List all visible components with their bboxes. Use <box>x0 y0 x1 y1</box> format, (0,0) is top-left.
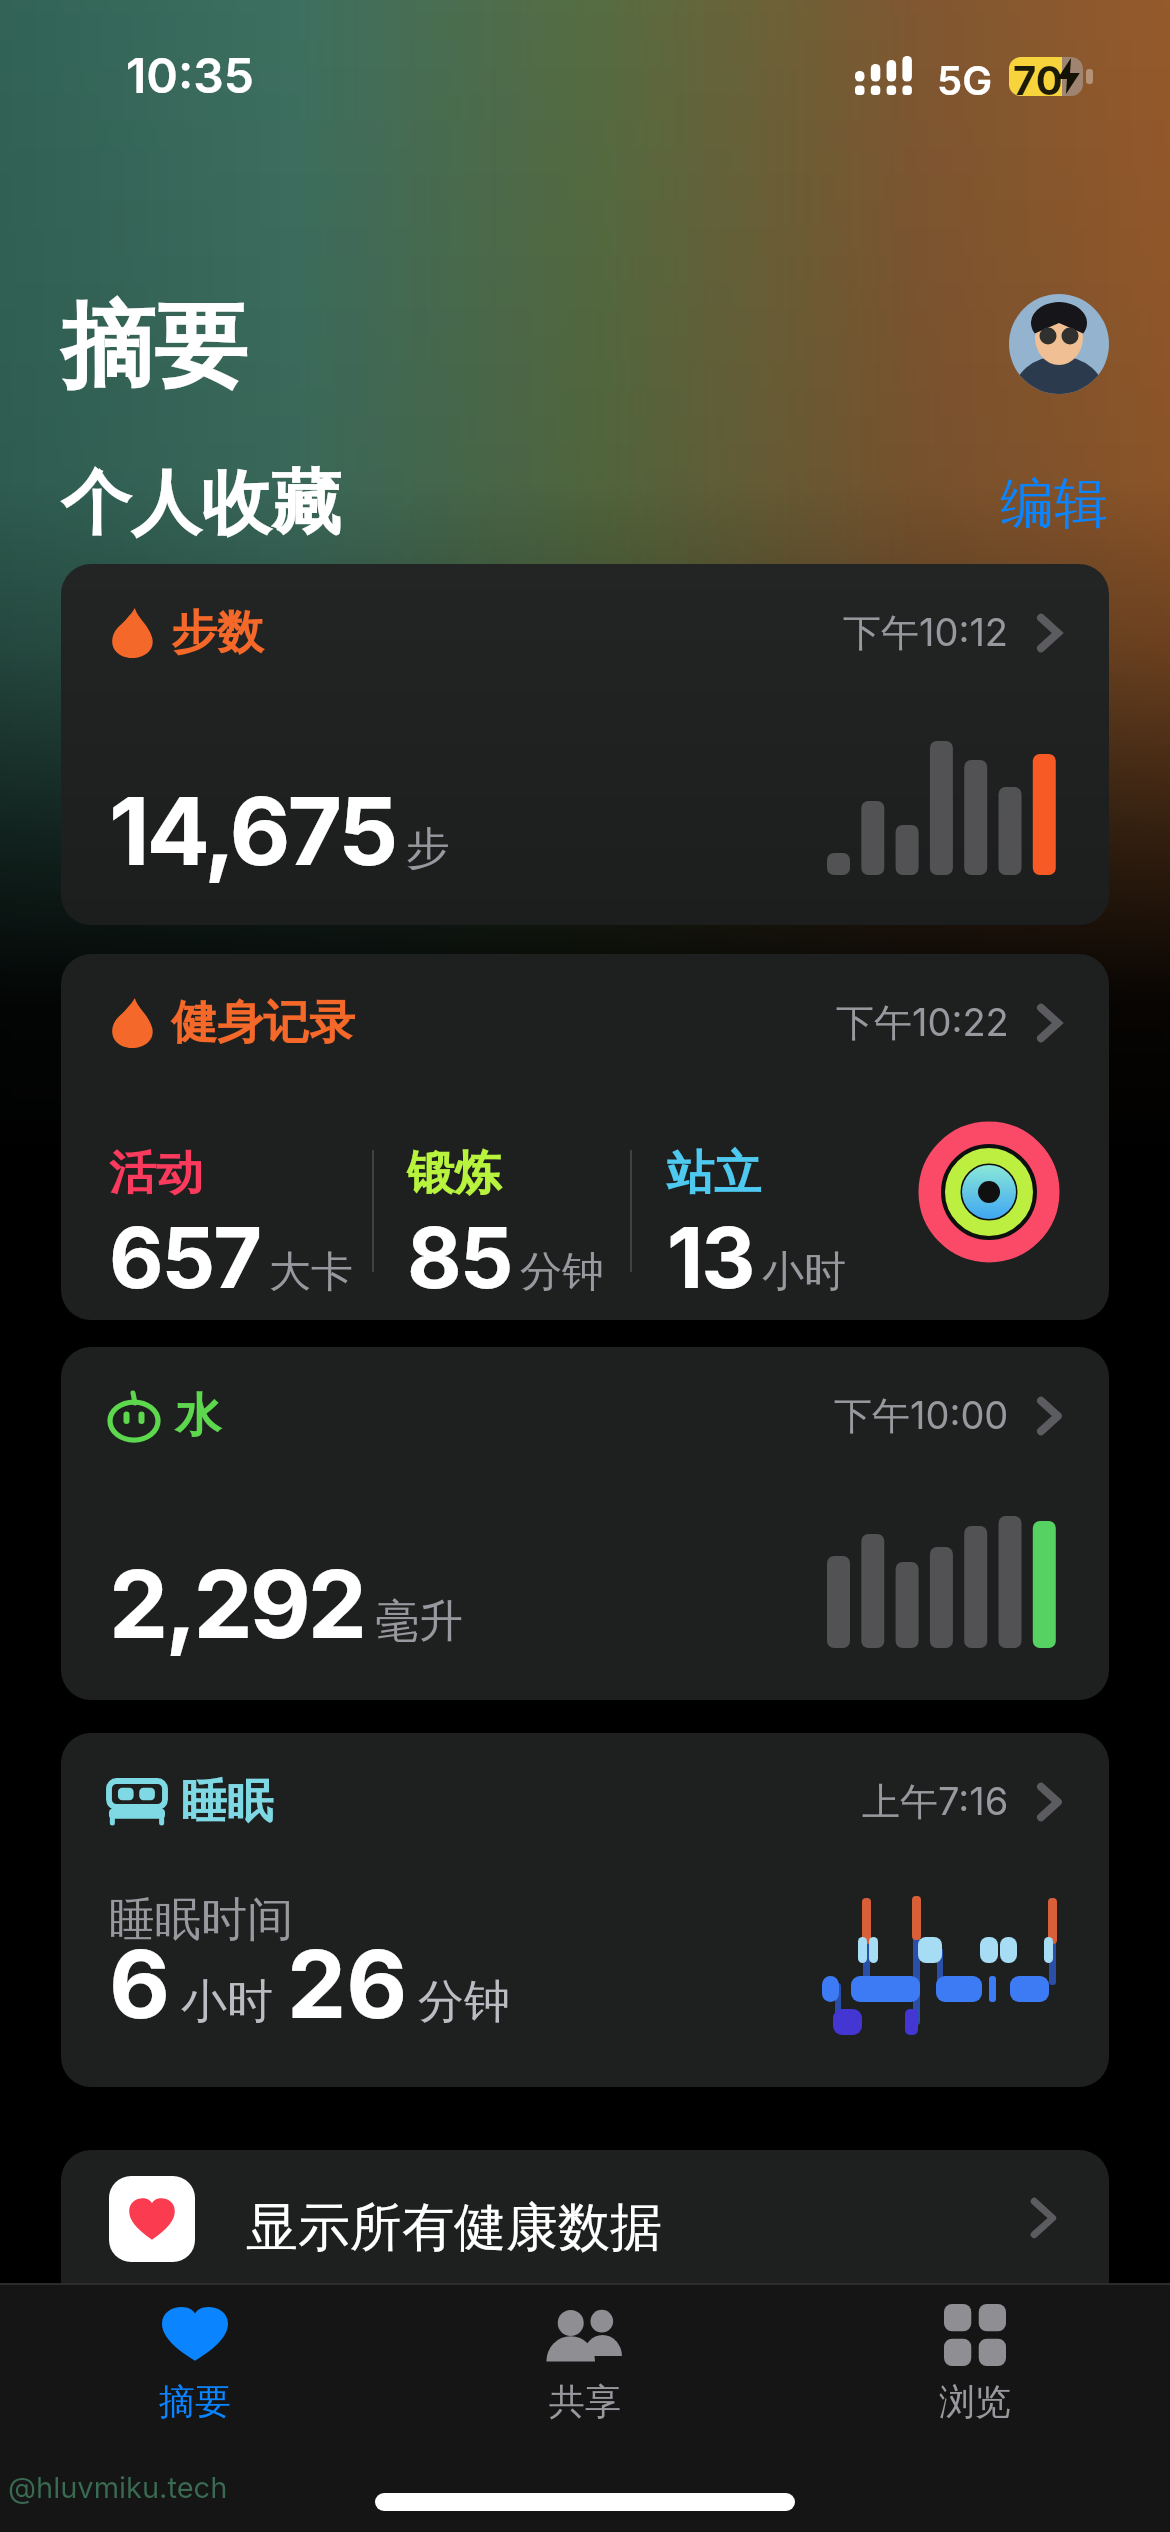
staticText: 小时 <box>181 1973 273 2031</box>
button[interactable]: 显示所有健康数据 <box>61 2150 1109 2320</box>
button[interactable] <box>1009 294 1109 394</box>
staticText: 毫升 <box>375 1594 463 1649</box>
staticText: 70 <box>1013 56 1063 104</box>
staticText: 下午10:12 <box>843 609 1009 657</box>
staticText: 睡眠 <box>181 1773 273 1831</box>
staticText: 657 <box>109 1207 261 1309</box>
staticText: 5G <box>937 56 993 104</box>
staticText: @hluvmiku.tech <box>8 2470 228 2505</box>
staticText: 14,675 <box>109 774 396 888</box>
staticText: 共享 <box>549 2379 621 2424</box>
staticText: 活动 <box>109 1144 203 1203</box>
staticText: 下午10:00 <box>834 1392 1009 1440</box>
staticText: 13 <box>667 1207 754 1309</box>
staticText: 大卡 <box>269 1246 353 1299</box>
button[interactable]: 编辑 <box>1000 470 1108 538</box>
button[interactable]: 睡眠 <box>61 1733 1109 2087</box>
staticText: 下午10:22 <box>836 999 1009 1047</box>
staticText: 10:35 <box>126 46 254 104</box>
button[interactable]: 摘要 <box>95 2301 295 2424</box>
staticText: 26 <box>287 1927 408 2041</box>
staticText: 摘要 <box>61 288 247 405</box>
staticText: 2,292 <box>109 1547 365 1661</box>
staticText: 水 <box>175 1387 221 1445</box>
staticText: 摘要 <box>159 2379 231 2424</box>
staticText: 85 <box>407 1207 512 1309</box>
button[interactable]: 步数 <box>61 564 1109 925</box>
staticText: 显示所有健康数据 <box>246 2195 662 2261</box>
button[interactable]: 共享 <box>485 2301 685 2424</box>
button[interactable]: 浏览 <box>875 2301 1075 2424</box>
staticText: 健身记录 <box>171 994 355 1052</box>
staticText: 小时 <box>762 1246 846 1299</box>
staticText: 睡眠时间 <box>109 1891 293 1949</box>
staticText: 6 <box>109 1927 171 2041</box>
button[interactable]: 水 <box>61 1347 1109 1700</box>
staticText: 步 <box>406 821 450 876</box>
staticText: 步数 <box>171 604 263 662</box>
staticText: 个人收藏 <box>61 460 341 548</box>
staticText: 浏览 <box>939 2379 1011 2424</box>
staticText: 分钟 <box>520 1246 604 1299</box>
staticText: 上午7:16 <box>862 1778 1009 1826</box>
button[interactable]: 健身记录 <box>61 954 1109 1320</box>
staticText: 站立 <box>667 1144 761 1203</box>
staticText: 分钟 <box>418 1973 510 2031</box>
staticText: 锻炼 <box>407 1144 501 1203</box>
